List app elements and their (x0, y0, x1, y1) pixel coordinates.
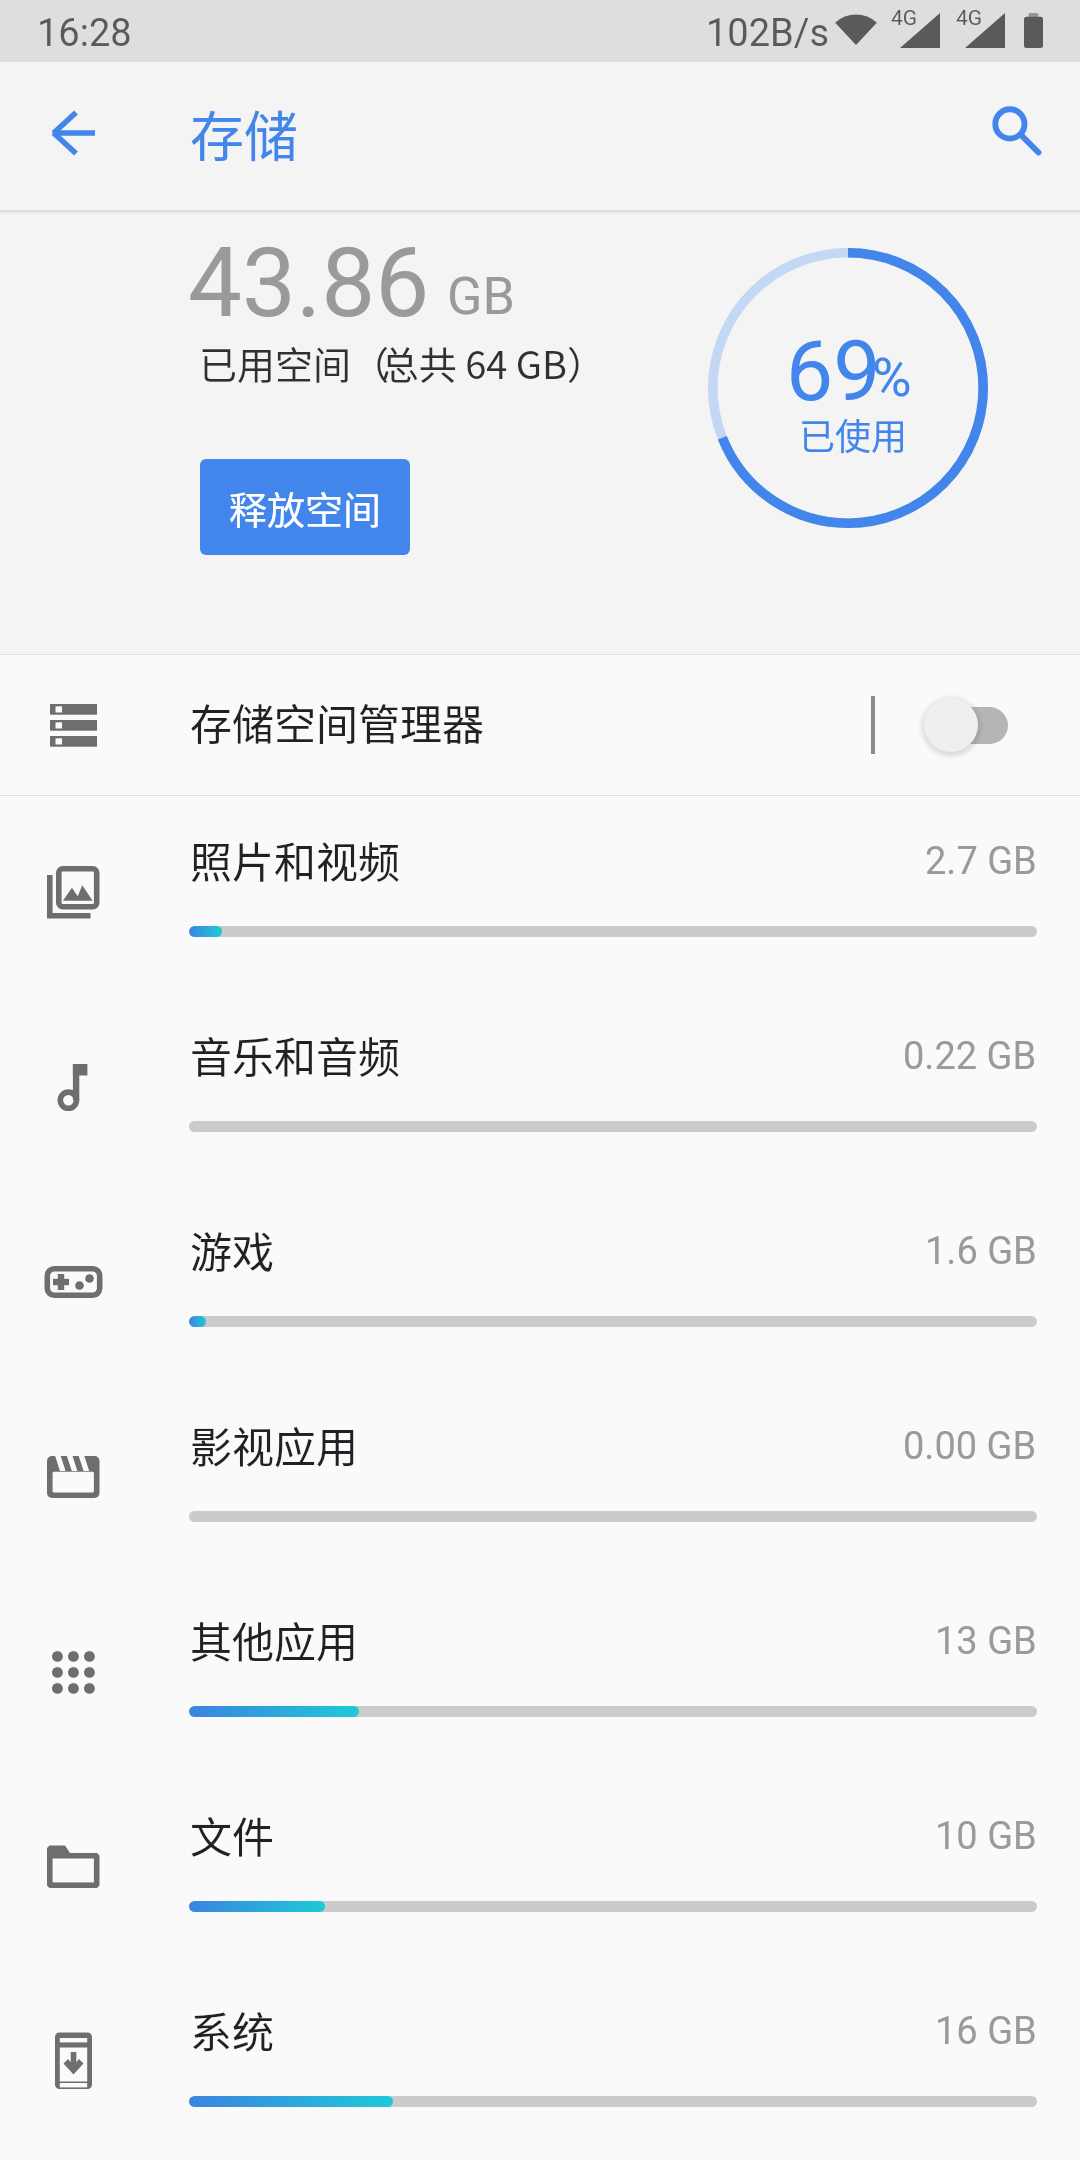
button[interactable]: 游戏 (0, 1186, 1080, 1381)
staticText: 音乐和音频 (190, 1024, 401, 1085)
button[interactable]: Storage manager switch (905, 675, 1025, 775)
staticText: 1.6 GB (925, 1229, 1037, 1274)
staticText: 10 GB (935, 1814, 1037, 1859)
button[interactable]: 文件 (0, 1771, 1080, 1966)
button[interactable]: 音乐和音频 (0, 991, 1080, 1186)
staticText: 102B/s (706, 11, 830, 56)
button[interactable]: 照片和视频 (0, 796, 1080, 991)
button[interactable]: 存储空间管理器 (0, 655, 1080, 795)
button[interactable]: 影视应用 (0, 1381, 1080, 1576)
staticText: 0.00 GB (903, 1424, 1037, 1469)
staticText: 4G (891, 6, 918, 31)
button[interactable]: 系统 (0, 1966, 1080, 2160)
staticText: 已用空间（总共 64 GB） (199, 335, 597, 390)
staticText: 已使用 (799, 408, 908, 460)
staticText: 16 GB (935, 2009, 1037, 2054)
staticText: 游戏 (190, 1219, 275, 1280)
staticText: 文件 (190, 1804, 275, 1865)
staticText: 存储 (190, 94, 298, 172)
staticText: GB (447, 266, 515, 327)
button[interactable]: 释放空间 (200, 459, 410, 555)
staticText: 影视应用 (190, 1414, 359, 1475)
staticText: 系统 (190, 1999, 275, 2060)
staticText: 释放空间 (229, 480, 382, 535)
staticText: 2.7 GB (925, 839, 1037, 884)
staticText: 照片和视频 (190, 829, 401, 890)
staticText: % (872, 346, 912, 409)
button[interactable]: 其他应用 (0, 1576, 1080, 1771)
staticText: 69 (786, 322, 881, 420)
staticText: 4G (956, 6, 983, 31)
button[interactable]: Back (26, 88, 122, 184)
staticText: 存储空间管理器 (190, 691, 485, 752)
staticText: 13 GB (935, 1619, 1037, 1664)
staticText: 0.22 GB (903, 1034, 1037, 1079)
staticText: 16:28 (37, 11, 132, 56)
button[interactable]: Search (966, 88, 1062, 184)
staticText: 43.86 (188, 227, 430, 340)
staticText: 其他应用 (190, 1609, 359, 1670)
